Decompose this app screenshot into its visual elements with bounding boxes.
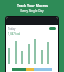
staticText: Track Your Macros — [17, 3, 48, 8]
button[interactable] — [49, 27, 56, 30]
staticText: 1,847 kcal — [8, 32, 21, 36]
staticText: Today — [8, 27, 16, 31]
staticText: Every Single Day — [20, 9, 44, 13]
